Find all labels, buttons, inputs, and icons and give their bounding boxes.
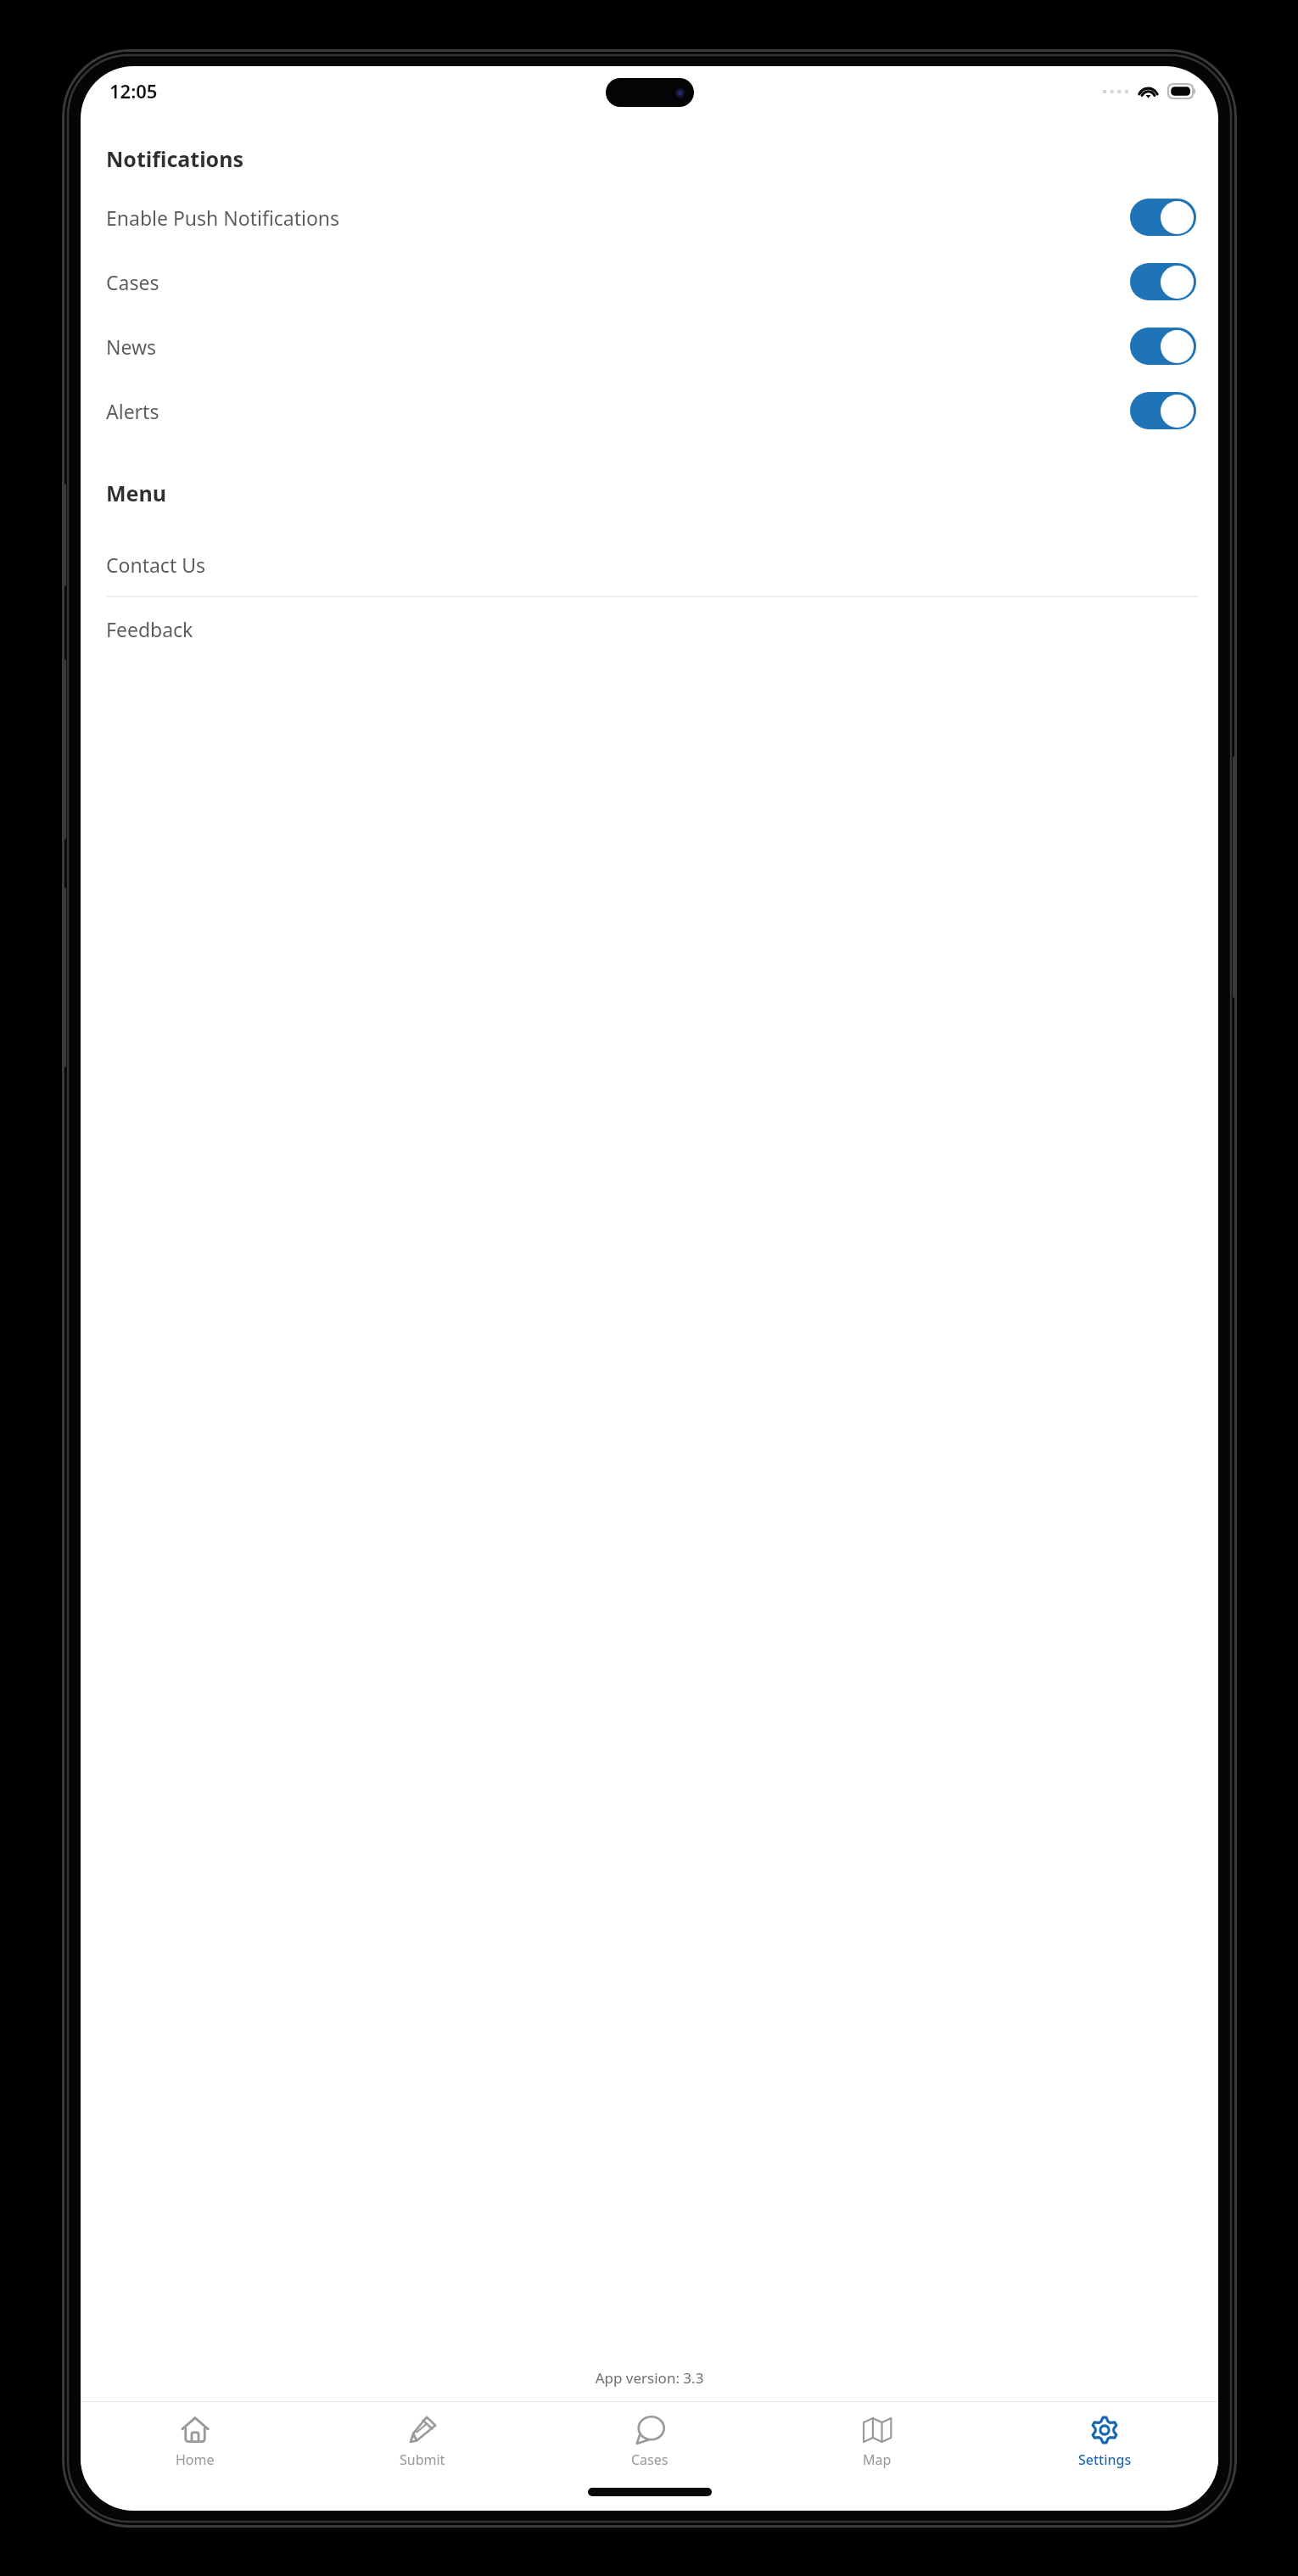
button[interactable]: Settings	[991, 2402, 1218, 2480]
staticText: App version: 3.3	[81, 2368, 1218, 2388]
staticText: Notifications	[106, 144, 1218, 173]
button[interactable]: Toggle	[1130, 392, 1196, 429]
staticText: News	[106, 333, 157, 360]
button[interactable]: Contact Us	[81, 533, 1218, 596]
staticText: Alerts	[106, 398, 159, 424]
button[interactable]: Alerts	[81, 378, 1218, 443]
staticText: Cases	[106, 269, 159, 295]
button[interactable]: News	[81, 314, 1218, 378]
staticText: Menu	[106, 479, 1218, 507]
button[interactable]: Toggle	[1130, 328, 1196, 365]
staticText: Cases	[631, 2450, 669, 2469]
button[interactable]: Cases	[536, 2402, 764, 2480]
button[interactable]: Home	[81, 2402, 309, 2480]
staticText: 12:05	[109, 78, 158, 104]
button[interactable]: Map	[764, 2402, 991, 2480]
button[interactable]: Enable Push Notifications	[81, 185, 1218, 249]
button[interactable]: Feedback	[81, 597, 1218, 660]
button[interactable]: Submit	[309, 2402, 536, 2480]
staticText: Home	[176, 2450, 215, 2469]
staticText: Feedback	[106, 616, 193, 642]
staticText: Map	[863, 2450, 892, 2469]
staticText: Enable Push Notifications	[106, 204, 340, 231]
button[interactable]: Cases	[81, 249, 1218, 314]
button[interactable]: Toggle	[1130, 199, 1196, 236]
staticText: Contact Us	[106, 552, 206, 578]
staticText: Settings	[1078, 2450, 1132, 2469]
staticText: Submit	[400, 2450, 445, 2469]
button[interactable]: Toggle	[1130, 263, 1196, 300]
